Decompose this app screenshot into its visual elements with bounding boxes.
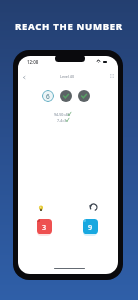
button[interactable]: Back: [19, 72, 29, 82]
button[interactable]: Completed: [78, 90, 90, 102]
staticText: Level 40: [60, 74, 75, 79]
staticText: 7-4=3: [57, 118, 67, 123]
button[interactable]: 9: [83, 219, 98, 234]
staticText: 12:08: [27, 59, 39, 65]
button[interactable]: More options: [106, 70, 117, 81]
button[interactable]: Hint: [35, 203, 46, 214]
staticText: 9: [88, 222, 93, 232]
button[interactable]: 3: [37, 219, 52, 234]
button[interactable]: Undo: [87, 201, 99, 213]
staticText: 94-50=44: [54, 112, 70, 117]
staticText: 3: [42, 222, 47, 232]
button[interactable]: 6: [42, 90, 54, 102]
staticText: REACH THE NUMBER: [15, 20, 123, 33]
staticText: 6: [46, 92, 50, 101]
button[interactable]: Completed: [60, 90, 72, 102]
